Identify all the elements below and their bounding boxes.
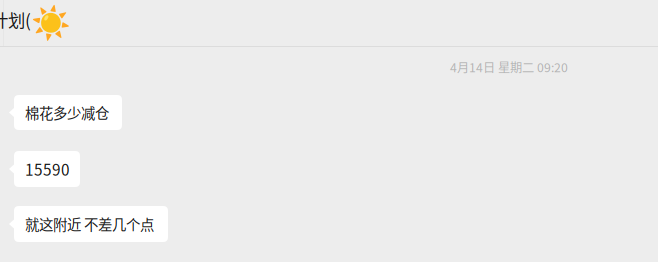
staticText: 4月14日 星期二 09:20 xyxy=(450,58,568,76)
staticText: 计划( xyxy=(0,7,31,32)
button[interactable]: 计划(☀️ — conversation title xyxy=(0,0,658,46)
staticText: ☀️ xyxy=(31,4,71,41)
staticText: 就这附近 不差几个点 xyxy=(25,214,154,234)
staticText: 棉花多少减仓 xyxy=(25,102,109,123)
button[interactable]: 棉花多少减仓 xyxy=(9,95,122,130)
button[interactable]: 15590 xyxy=(9,151,80,187)
button[interactable]: 就这附近 不差几个点 xyxy=(9,206,168,242)
staticText: 15590 xyxy=(25,158,70,180)
